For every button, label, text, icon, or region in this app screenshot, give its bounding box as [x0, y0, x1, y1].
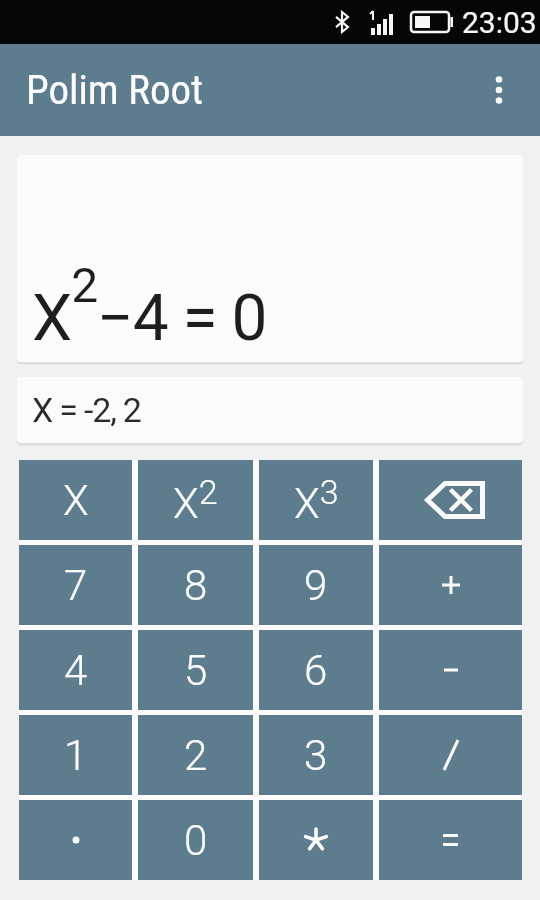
- staticText: X: [63, 476, 89, 525]
- staticText: 7: [64, 561, 88, 610]
- button[interactable]: [379, 545, 522, 625]
- button[interactable]: [379, 800, 522, 880]
- staticText: 5: [184, 646, 208, 695]
- staticText: 6: [304, 646, 328, 695]
- staticText: Polim Root: [26, 66, 204, 114]
- staticText: 3: [304, 731, 328, 780]
- staticText: X = -2, 2: [32, 390, 141, 430]
- button[interactable]: X3: [259, 460, 373, 540]
- button[interactable]: 2: [138, 715, 253, 795]
- button[interactable]: [19, 800, 132, 880]
- button[interactable]: 8: [138, 545, 253, 625]
- button[interactable]: X: [19, 460, 132, 540]
- button[interactable]: 0: [138, 800, 253, 880]
- button[interactable]: [259, 800, 373, 880]
- staticText: 23:03: [462, 5, 537, 40]
- button[interactable]: [466, 44, 532, 136]
- button[interactable]: [379, 460, 522, 540]
- button[interactable]: 5: [138, 630, 253, 710]
- staticText: 1: [64, 731, 88, 780]
- staticText: X2−4 = 0: [32, 257, 267, 355]
- button[interactable]: [379, 715, 522, 795]
- button[interactable]: 3: [259, 715, 373, 795]
- button[interactable]: [379, 630, 522, 710]
- button[interactable]: 4: [19, 630, 132, 710]
- staticText: X3: [294, 472, 339, 528]
- button[interactable]: 7: [19, 545, 132, 625]
- button[interactable]: 6: [259, 630, 373, 710]
- button[interactable]: 9: [259, 545, 373, 625]
- staticText: 4: [64, 646, 88, 695]
- staticText: 9: [304, 561, 328, 610]
- staticText: 2: [184, 731, 208, 780]
- staticText: 8: [184, 561, 208, 610]
- button[interactable]: X2: [138, 460, 253, 540]
- staticText: 0: [184, 816, 208, 865]
- button[interactable]: 1: [19, 715, 132, 795]
- staticText: X2: [173, 472, 218, 528]
